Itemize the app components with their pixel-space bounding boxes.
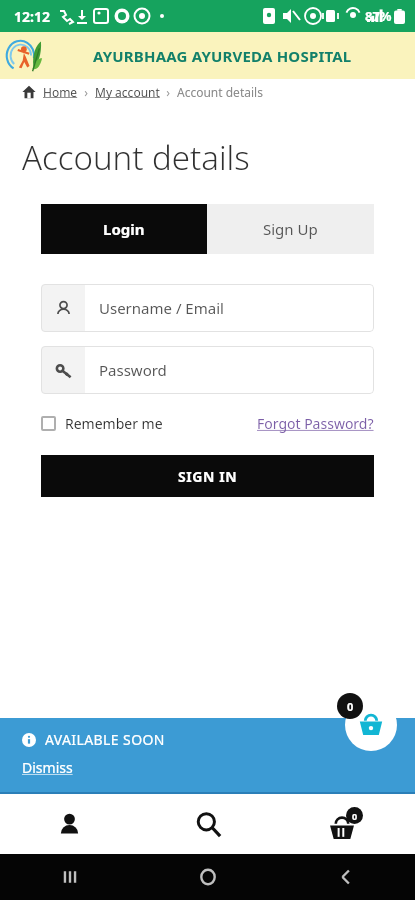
staticText: Account details <box>22 135 250 180</box>
button[interactable]: Forgot Password? <box>257 414 374 433</box>
staticText: Password <box>99 360 167 380</box>
button[interactable]: My account <box>95 84 160 100</box>
staticText: › <box>160 84 177 100</box>
button[interactable]: Password <box>41 346 374 394</box>
button[interactable]: Cart <box>277 794 415 854</box>
button[interactable]: Back <box>277 854 415 900</box>
button[interactable]: Login <box>41 204 207 254</box>
button[interactable]: Dismiss <box>22 758 73 777</box>
button[interactable]: Remember me <box>41 414 163 433</box>
staticText: 0 <box>352 810 358 822</box>
staticText: Account details <box>177 84 263 100</box>
staticText: Login <box>103 219 145 239</box>
staticText: Remember me <box>65 414 163 433</box>
staticText: 87% <box>365 7 392 25</box>
button[interactable]: Home <box>43 84 78 100</box>
staticText: SIGN IN <box>178 467 238 486</box>
button[interactable]: Account <box>0 794 139 854</box>
staticText: AYURBHAAG AYURVEDA HOSPITAL <box>93 46 352 66</box>
staticText: › <box>78 84 95 100</box>
button[interactable]: SIGN IN <box>41 455 374 497</box>
staticText: Username / Email <box>99 298 224 318</box>
staticText: Sign Up <box>263 219 318 239</box>
staticText: 12:12 <box>14 7 50 26</box>
button[interactable]: Home <box>139 854 277 900</box>
staticText: AVAILABLE SOON <box>45 730 165 749</box>
button[interactable]: Cart <box>345 699 397 751</box>
staticText: 0 <box>347 699 354 714</box>
button[interactable]: Recents <box>0 854 139 900</box>
button[interactable]: Search <box>139 794 277 854</box>
button[interactable]: Username / Email <box>41 284 374 332</box>
button[interactable]: Sign Up <box>207 204 374 254</box>
